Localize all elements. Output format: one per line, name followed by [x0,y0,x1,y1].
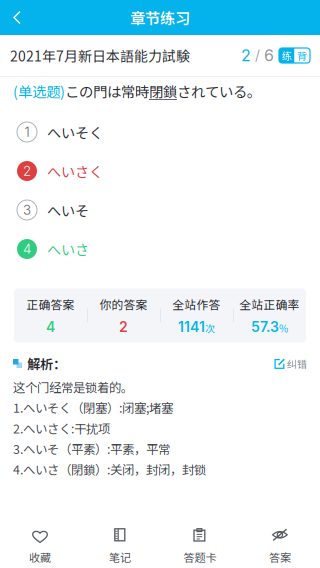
staticText: 2 [23,163,31,179]
staticText: 笔记 [109,549,131,565]
staticText: / [251,47,264,64]
staticText: この門は常時 [65,81,149,101]
button[interactable]: 答题卡 [160,504,240,568]
staticText: 閉鎖 [149,81,177,101]
staticText: 6 [264,46,274,65]
button[interactable]: Back [0,0,44,35]
staticText: 2021年7月新日本語能力試験 [10,45,190,66]
staticText: 收藏 [29,549,51,565]
button[interactable]: 3 [0,190,320,229]
button[interactable]: 收藏 [0,504,80,568]
staticText: 练 [282,48,292,63]
button[interactable]: 纠错 [274,356,307,371]
staticText: 57.3 [251,318,279,335]
staticText: へいそく [47,122,103,142]
staticText: % [279,321,288,335]
staticText: へいさ [47,239,89,259]
staticText: へいそ [47,200,89,220]
staticText: 全站正确率 [239,295,299,312]
button[interactable]: 4 [0,229,320,268]
staticText: 2.へいさく:干扰项 [13,419,110,437]
staticText: 2 [119,318,128,335]
staticText: 4 [23,241,31,257]
button[interactable]: 笔记 [80,504,160,568]
staticText: (单选题) [13,81,65,101]
staticText: 2 [241,46,251,65]
staticText: へいさく [47,161,103,181]
staticText: 3.へいそ（平素）:平素，平常 [13,440,170,458]
staticText: されている。 [177,81,261,101]
staticText: 解析： [27,354,66,373]
staticText: 正确答案 [26,295,74,312]
staticText: 1.へいそく（閉塞）:闭塞;堵塞 [13,398,173,416]
staticText: 纠错 [287,356,307,371]
button[interactable]: 背 [294,48,310,63]
staticText: 答案 [269,549,291,565]
staticText: 背 [297,48,307,63]
staticText: 你的答案 [99,295,147,312]
staticText: 1141 [178,318,205,335]
staticText: 3 [23,202,31,218]
staticText: 这个门经常是锁着的。 [13,378,133,396]
staticText: 章节练习 [130,6,190,29]
button[interactable]: 1 [0,112,320,151]
staticText: 1 [24,124,29,140]
staticText: 次 [205,321,215,335]
staticText: 4.へいさ（閉鎖）:关闭，封闭，封锁 [13,460,206,478]
staticText: 答题卡 [183,549,216,565]
staticText: 4 [46,318,55,335]
staticText: 全站作答 [172,295,220,312]
button[interactable]: 2 [0,151,320,190]
button[interactable]: 答案 [240,504,320,568]
button[interactable]: 练 [279,48,294,63]
